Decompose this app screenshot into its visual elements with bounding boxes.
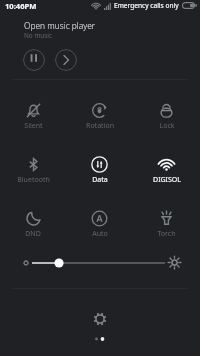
- button[interactable]: Torch: [133, 199, 200, 252]
- staticText: Lock: [159, 121, 175, 131]
- staticText: Open music player: [24, 20, 96, 31]
- button[interactable]: DND: [0, 199, 66, 252]
- staticText: Torch: [157, 229, 176, 239]
- button[interactable]: DIGISOL: [133, 145, 200, 198]
- staticText: Rotation: [86, 121, 114, 131]
- button[interactable]: Next: [55, 49, 77, 71]
- staticText: Silent: [24, 121, 43, 131]
- staticText: Data: [92, 175, 108, 185]
- staticText: DND: [25, 229, 41, 239]
- button[interactable]: Settings: [88, 307, 112, 331]
- button[interactable]: Open music player: [0, 0, 200, 79]
- button[interactable]: [0, 252, 200, 274]
- staticText: 10:46PM: [5, 1, 37, 11]
- button[interactable]: Pause: [23, 49, 45, 71]
- button[interactable]: Auto: [66, 199, 133, 252]
- button[interactable]: Bluetooth: [0, 145, 66, 198]
- staticText: Emergency calls only: [114, 1, 179, 10]
- button[interactable]: Lock: [133, 91, 200, 144]
- button[interactable]: Silent: [0, 91, 66, 144]
- staticText: DIGISOL: [153, 175, 181, 185]
- button[interactable]: Data: [66, 145, 133, 198]
- staticText: No music: [24, 31, 53, 40]
- staticText: Auto: [92, 229, 108, 239]
- button[interactable]: Rotation: [66, 91, 133, 144]
- staticText: Bluetooth: [17, 175, 50, 185]
